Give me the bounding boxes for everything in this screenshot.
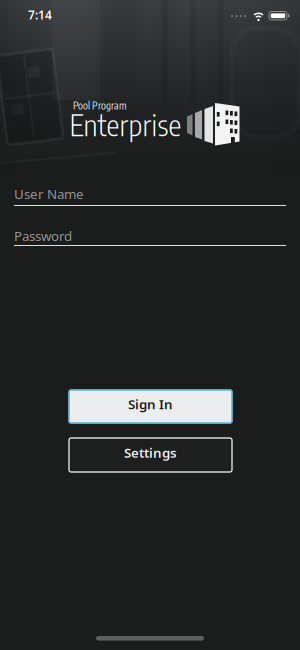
staticText: Pool Program [73, 99, 127, 112]
button[interactable]: Sign In [69, 390, 232, 423]
staticText: Settings [124, 444, 177, 461]
button[interactable]: User Name [14, 177, 286, 207]
button[interactable]: Password [14, 217, 286, 247]
staticText: Password [14, 227, 72, 245]
staticText: Sign In [128, 395, 173, 413]
staticText: 7:14 [28, 7, 52, 23]
staticText: Enterprise [69, 106, 181, 143]
staticText: User Name [14, 185, 84, 203]
button[interactable]: Settings [69, 438, 232, 472]
